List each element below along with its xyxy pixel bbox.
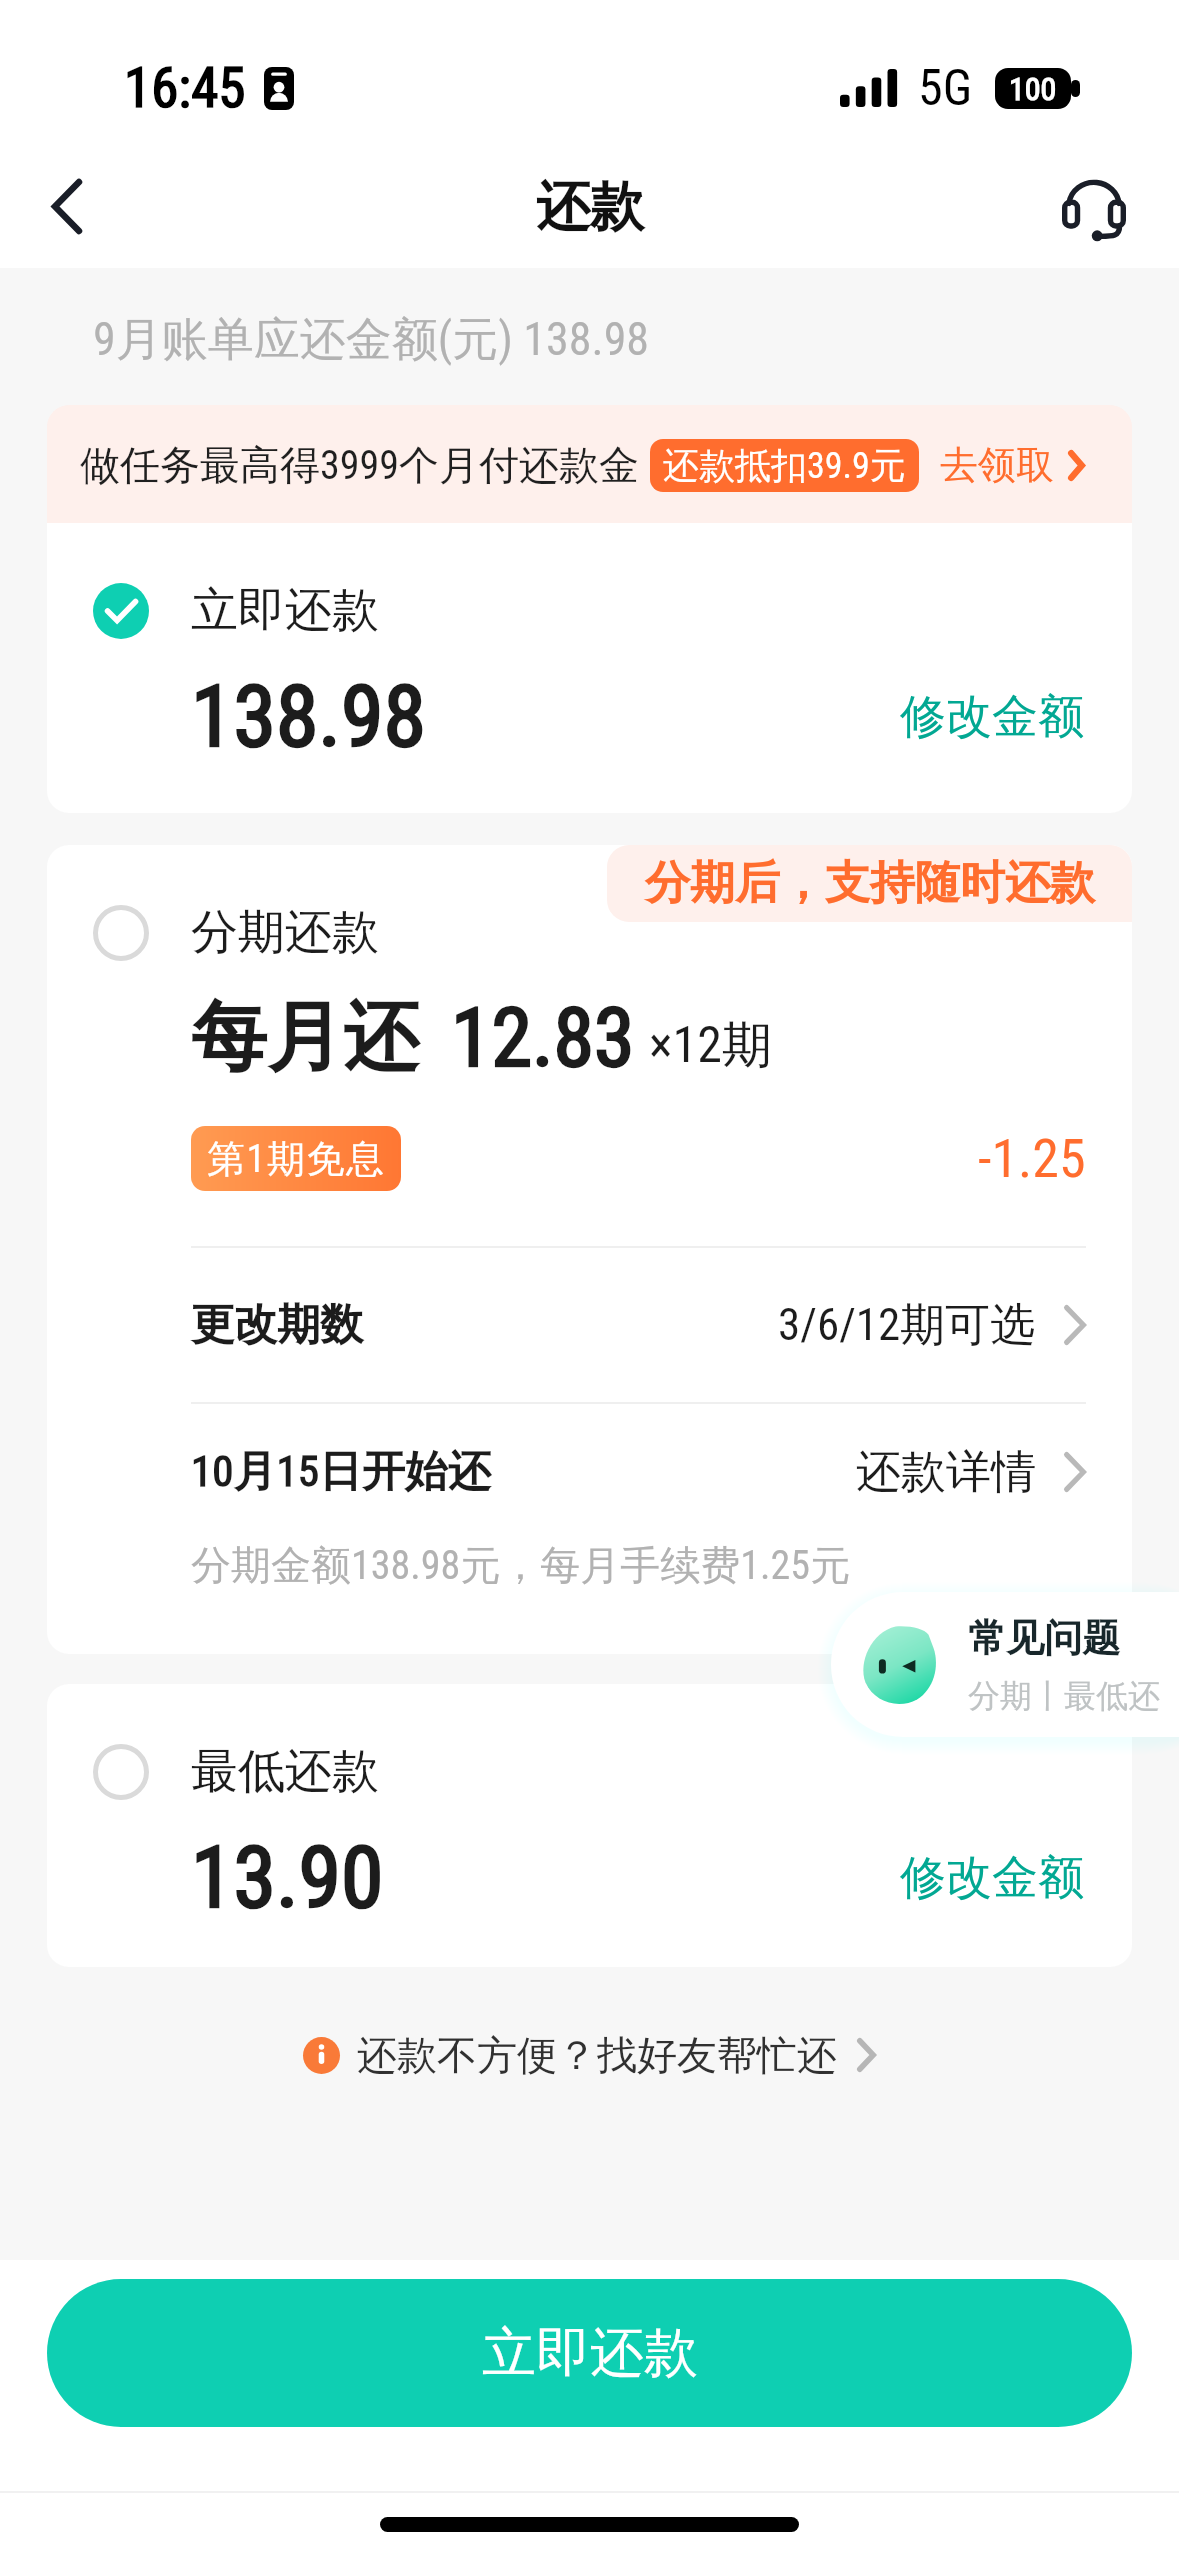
staticText: 分期还款	[191, 903, 379, 962]
staticText: 100	[1009, 70, 1057, 108]
staticText: 138.98	[191, 666, 426, 767]
staticText: 分期后，支持随时还款	[645, 855, 1095, 912]
staticText: 10月15日开始还	[191, 1445, 491, 1499]
button[interactable]: 立即还款	[47, 2279, 1132, 2427]
button[interactable]: 去领取	[940, 429, 1085, 501]
staticText: 还款详情	[856, 1444, 1036, 1501]
staticText: 第1期免息	[207, 1135, 386, 1183]
staticText: 做任务最高得3999个月付还款金	[80, 440, 639, 490]
button[interactable]: 最低还款	[47, 1684, 1132, 1967]
staticText: 最低还款	[191, 1742, 379, 1801]
staticText: 9月账单应还金额(元) 138.98	[93, 311, 650, 369]
button[interactable]: 修改金额	[880, 1839, 1086, 1917]
staticText: 分期丨最低还	[968, 1676, 1160, 1716]
button[interactable]: 10月15日开始还	[191, 1404, 1086, 1540]
staticText: 立即还款	[191, 581, 379, 640]
staticText: 修改金额	[900, 688, 1084, 746]
staticText: 去领取	[940, 441, 1054, 489]
staticText: ×12期	[649, 1014, 772, 1077]
button[interactable]: FAQ	[831, 1592, 1179, 1737]
staticText: 分期金额138.98元，每月手续费1.25元	[191, 1540, 851, 1590]
staticText: 立即还款	[482, 2319, 698, 2387]
staticText: 还款不方便？找好友帮忙还	[357, 2030, 837, 2080]
button[interactable]: 修改金额	[880, 678, 1086, 756]
staticText: 13.90	[191, 1827, 384, 1928]
staticText: 还款	[536, 173, 644, 241]
staticText: 每月还	[191, 990, 419, 1086]
staticText: 3/6/12期可选	[778, 1297, 1036, 1354]
staticText: 更改期数	[191, 1298, 363, 1352]
button[interactable]: 还款不方便？找好友帮忙还	[293, 2020, 886, 2090]
staticText: 16:45	[124, 56, 246, 120]
button[interactable]: 立即还款	[47, 523, 1132, 813]
staticText: 12.83	[451, 990, 635, 1086]
button[interactable]: 更改期数	[191, 1248, 1086, 1402]
staticText: 修改金额	[900, 1849, 1084, 1907]
button[interactable]: Customer service	[1039, 152, 1149, 260]
button[interactable]: Back	[12, 152, 122, 260]
button[interactable]: 做任务最高得3999个月付还款金	[47, 405, 1132, 524]
button[interactable]: 分期还款	[47, 845, 1132, 1654]
staticText: 常见问题	[968, 1614, 1120, 1662]
staticText: 5G	[918, 59, 973, 118]
staticText: -1.25	[978, 1127, 1086, 1190]
staticText: 还款抵扣39.9元	[663, 443, 906, 488]
